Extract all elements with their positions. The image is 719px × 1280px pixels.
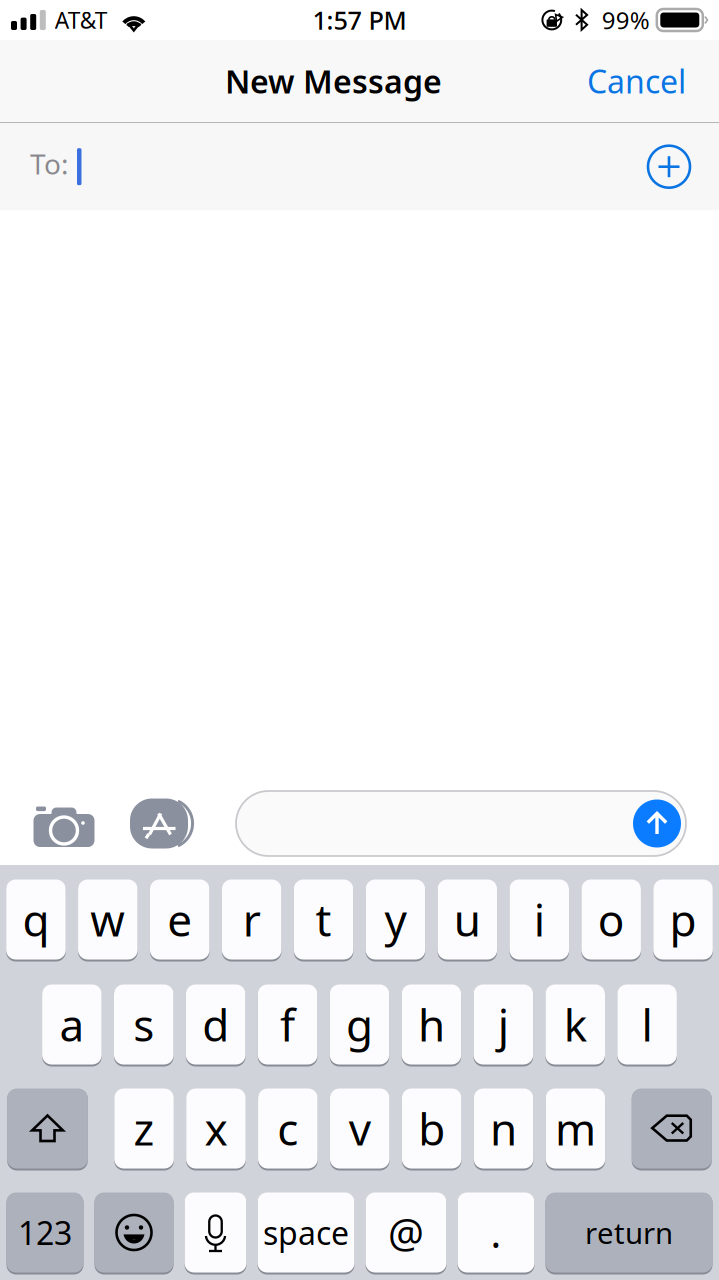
button[interactable]: Add contact <box>639 137 699 197</box>
staticText: t <box>316 890 332 949</box>
staticText: m <box>555 1099 596 1158</box>
staticText: w <box>90 890 125 949</box>
button[interactable]: n <box>474 1087 533 1170</box>
button[interactable] <box>94 1191 173 1274</box>
staticText: p <box>669 890 696 949</box>
staticText: To: <box>30 145 69 182</box>
button[interactable]: u <box>437 878 497 961</box>
button[interactable]: Apps <box>130 790 198 856</box>
button[interactable]: p <box>653 878 713 961</box>
staticText: New Message <box>225 60 442 102</box>
button[interactable]: q <box>6 878 66 961</box>
button[interactable]: . <box>457 1191 534 1274</box>
button[interactable]: l <box>617 983 677 1066</box>
staticText: j <box>498 995 509 1054</box>
staticText: d <box>202 995 229 1054</box>
staticText: k <box>564 995 587 1054</box>
button[interactable]: a <box>42 983 102 1066</box>
button[interactable]: Cancel <box>571 48 702 114</box>
button[interactable]: 123 <box>6 1191 83 1274</box>
staticText: return <box>585 1213 673 1252</box>
button[interactable]: z <box>114 1087 174 1170</box>
staticText: f <box>280 995 295 1054</box>
button[interactable]: d <box>186 983 245 1066</box>
button[interactable]: m <box>546 1087 605 1170</box>
staticText: q <box>22 890 49 949</box>
staticText: u <box>454 890 481 949</box>
staticText: b <box>418 1099 445 1158</box>
button[interactable] <box>184 1191 246 1274</box>
button[interactable]: i <box>509 878 569 961</box>
staticText: 123 <box>18 1211 72 1254</box>
staticText: @ <box>388 1206 424 1259</box>
staticText: o <box>598 890 625 949</box>
staticText: n <box>490 1099 517 1158</box>
staticText: e <box>167 890 192 949</box>
staticText: h <box>418 995 445 1054</box>
button[interactable]: f <box>258 983 317 1066</box>
button[interactable]: s <box>114 983 174 1066</box>
button[interactable]: h <box>402 983 461 1066</box>
button[interactable]: j <box>473 983 533 1066</box>
button[interactable]: x <box>186 1087 246 1170</box>
button[interactable]: v <box>330 1087 390 1170</box>
button[interactable]: k <box>545 983 605 1066</box>
button[interactable]: t <box>294 878 353 961</box>
button[interactable] <box>7 1087 88 1170</box>
button[interactable]: g <box>330 983 389 1066</box>
staticText: 1:57 PM <box>312 3 406 37</box>
staticText: i <box>534 890 545 949</box>
staticText: g <box>346 995 373 1054</box>
button[interactable]: r <box>222 878 281 961</box>
staticText: v <box>349 1099 371 1158</box>
button[interactable]: o <box>581 878 641 961</box>
staticText: y <box>384 890 406 949</box>
button[interactable]: b <box>402 1087 461 1170</box>
button[interactable]: @ <box>365 1191 446 1274</box>
button[interactable]: y <box>366 878 425 961</box>
staticText: l <box>642 995 653 1054</box>
button[interactable] <box>632 1087 712 1170</box>
staticText: . <box>490 1206 501 1259</box>
button[interactable]: space <box>257 1191 354 1274</box>
staticText: r <box>243 890 261 949</box>
staticText: AT&T <box>55 5 108 35</box>
staticText: space <box>263 1211 349 1254</box>
button[interactable]: e <box>150 878 209 961</box>
staticText: a <box>59 995 84 1054</box>
button[interactable]: c <box>258 1087 318 1170</box>
staticText: z <box>134 1099 155 1158</box>
button[interactable]: w <box>78 878 138 961</box>
staticText: s <box>133 995 154 1054</box>
staticText: c <box>277 1099 298 1158</box>
button[interactable]: Send <box>632 798 682 848</box>
staticText: 99% <box>602 4 650 36</box>
button[interactable]: Camera <box>33 790 95 856</box>
staticText: Cancel <box>587 60 686 102</box>
staticText: x <box>204 1099 227 1158</box>
button[interactable]: return <box>545 1191 712 1274</box>
